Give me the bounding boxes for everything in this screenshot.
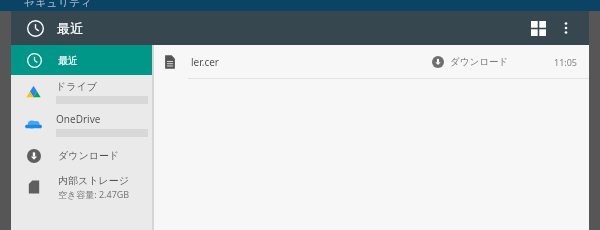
button[interactable]: グリッド表示 [523, 13, 553, 43]
staticText: ダウンロード [58, 149, 120, 162]
button[interactable]: OneDrive [11, 108, 152, 141]
staticText: ドライブ [56, 80, 97, 93]
staticText: 内部ストレージ [58, 174, 129, 187]
staticText: ダウンロード [450, 56, 509, 68]
button[interactable]: ドライブ [11, 75, 152, 108]
button[interactable]: 最近 [11, 45, 152, 75]
staticText: 11:05 [554, 56, 578, 68]
staticText: セキュリティ [24, 0, 92, 7]
staticText: OneDrive [56, 112, 101, 126]
staticText: 最近 [58, 54, 78, 67]
button[interactable]: ダウンロード [11, 141, 152, 170]
button[interactable]: その他のオプション [553, 15, 579, 41]
button[interactable]: ler.cer [154, 45, 589, 78]
staticText: ler.cer [191, 55, 432, 69]
button[interactable]: 内部ストレージ [11, 170, 152, 204]
staticText: 最近 [57, 20, 83, 36]
staticText: 空き容量: 2.47GB [58, 188, 130, 200]
